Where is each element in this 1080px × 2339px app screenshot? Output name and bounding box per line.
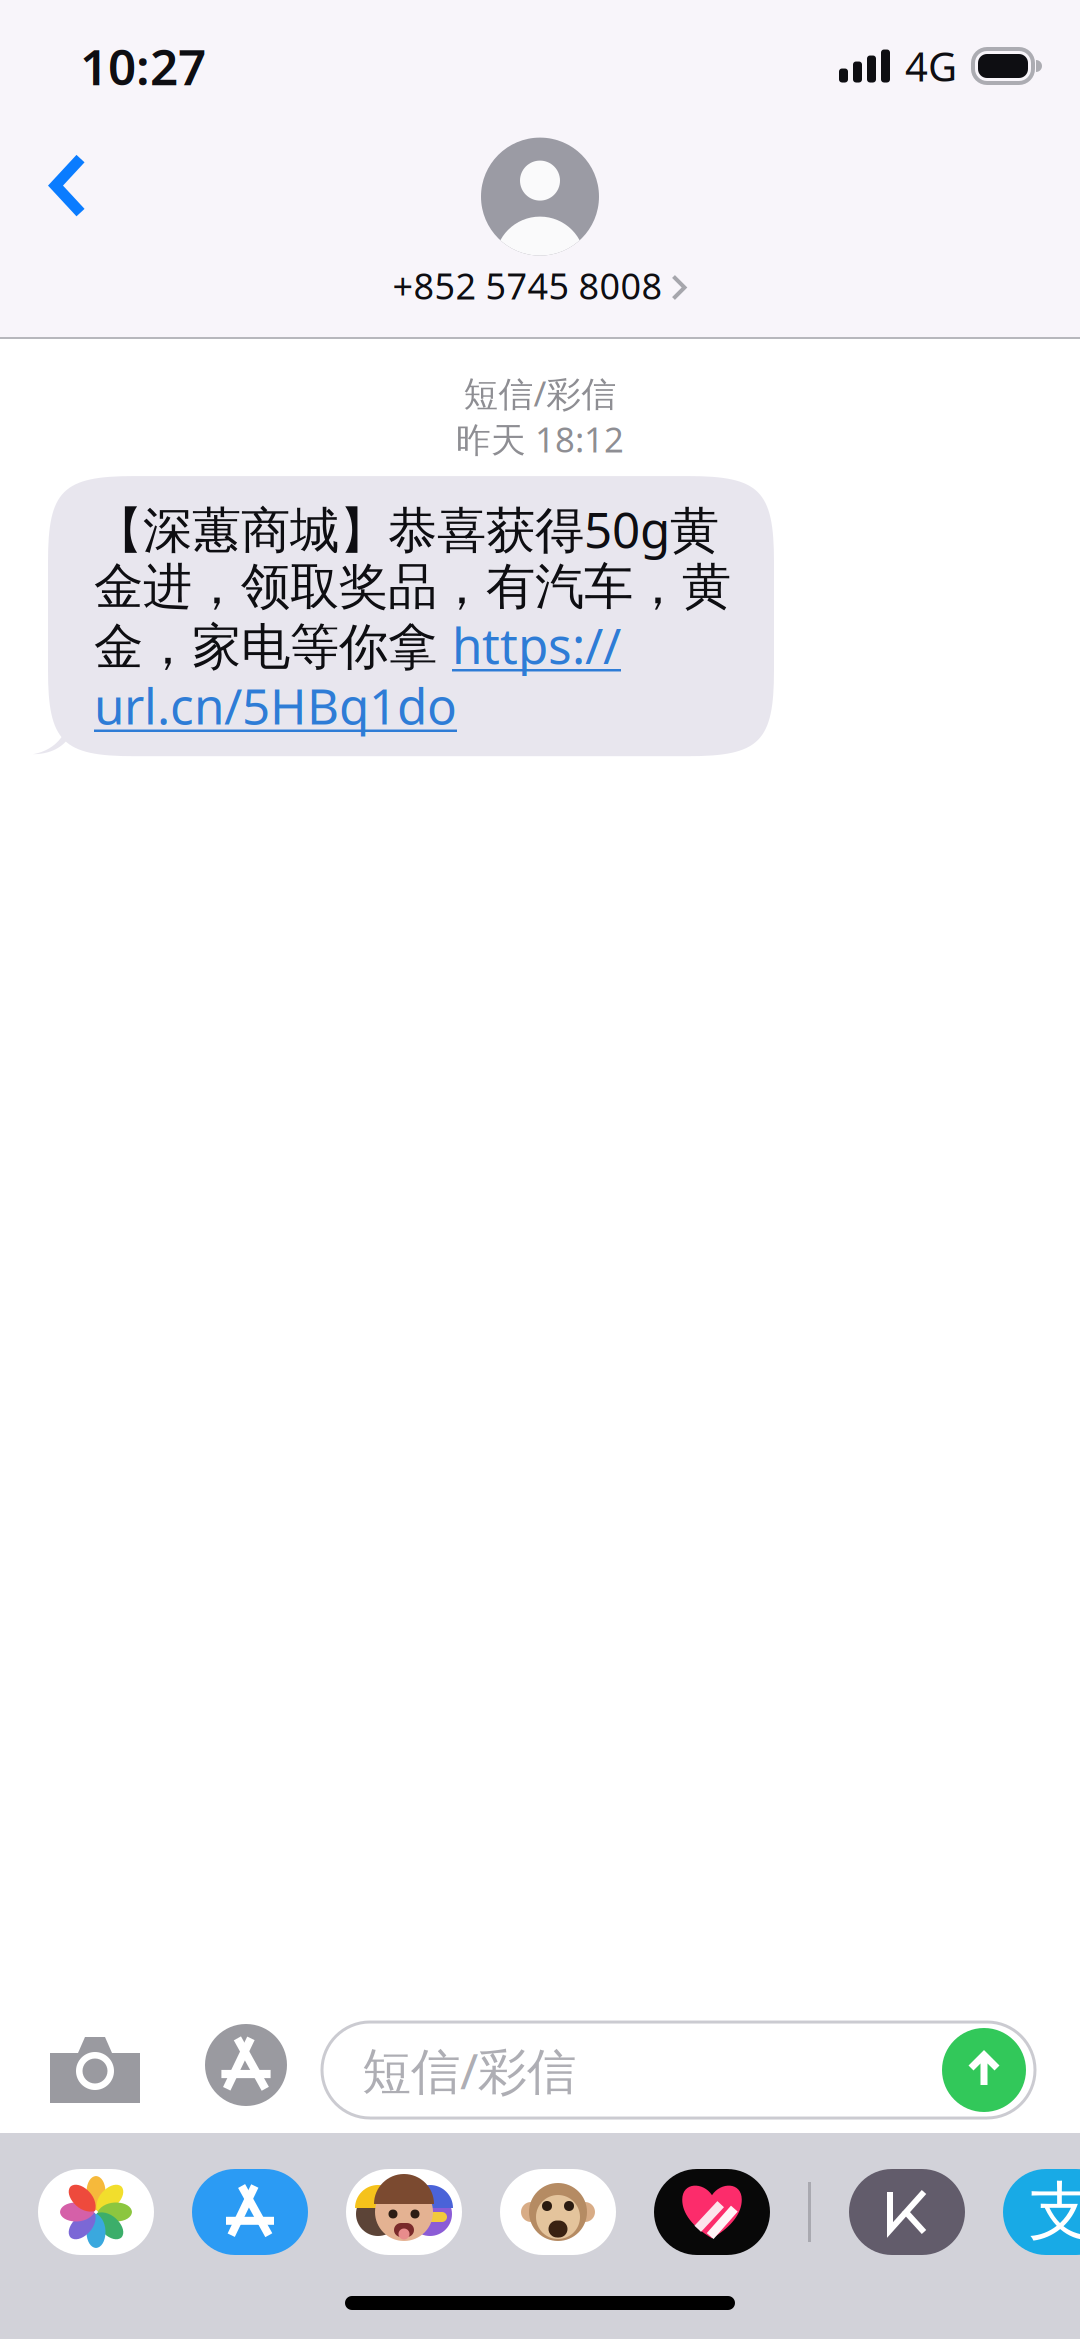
button[interactable]: App Store <box>170 1959 322 2133</box>
staticText: 支 <box>1029 2173 1080 2251</box>
staticText: 昨天 18:12 <box>456 416 624 462</box>
button[interactable]: +852 5745 8008 <box>392 146 687 323</box>
button[interactable]: 短信/彩信 <box>322 1998 1035 2094</box>
staticText: 短信/彩信 <box>362 2037 576 2103</box>
button[interactable]: Memoji stickers <box>346 2169 462 2255</box>
button[interactable]: Camera <box>0 1959 170 2133</box>
button[interactable]: App Store <box>192 2169 308 2255</box>
button[interactable]: Photos <box>38 2169 154 2255</box>
staticText: 【深蕙商城】恭喜获得50g黄金进，领取奖品，有汽车，黄金，家电等你拿 https… <box>94 496 731 738</box>
button[interactable]: Fitness <box>654 2169 770 2255</box>
button[interactable]: Animoji <box>500 2169 616 2255</box>
staticText: 短信/彩信 <box>463 370 616 416</box>
staticText: 10:27 <box>80 33 206 99</box>
button[interactable]: Alipay <box>1003 2169 1080 2255</box>
button[interactable]: Kika keyboard <box>849 2169 965 2255</box>
button[interactable]: Back <box>13 131 123 241</box>
staticText: 4G <box>905 39 957 92</box>
staticText: +852 5745 8008 <box>392 262 662 309</box>
